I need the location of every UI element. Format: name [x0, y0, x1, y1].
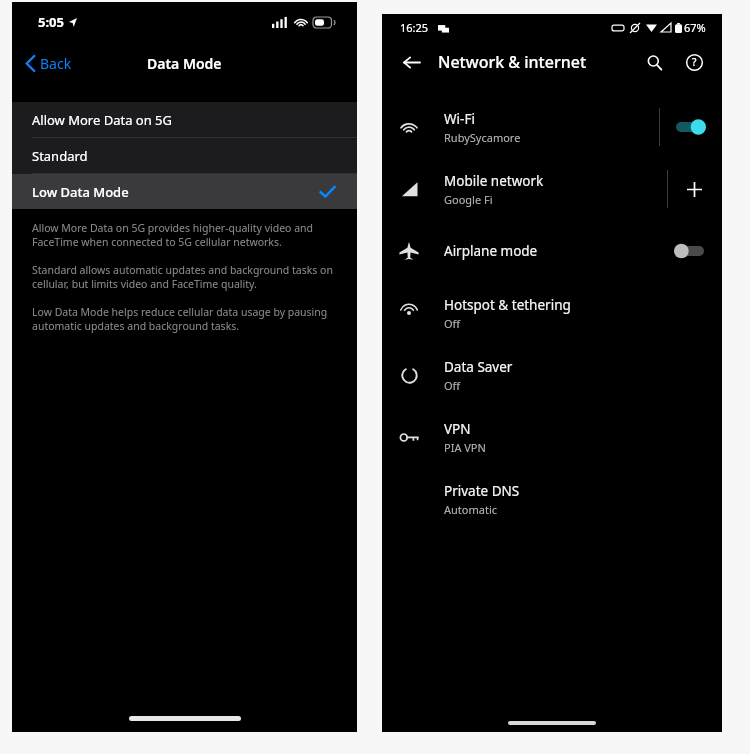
staticText: Airplane mode [444, 242, 538, 260]
button[interactable]: Data Saver [382, 344, 722, 406]
staticText: Automatic [444, 502, 497, 517]
staticText: Wi-Fi [444, 110, 475, 128]
staticText: Data Mode [147, 54, 222, 73]
staticText: 16:25 [400, 20, 429, 35]
staticText: Standard allows automatic updates and ba… [32, 263, 333, 291]
staticText: Google Fi [444, 192, 493, 207]
staticText: Mobile network [444, 172, 544, 190]
staticText: PIA VPN [444, 440, 486, 455]
button[interactable]: Wi-Fi [382, 96, 722, 158]
button[interactable]: Mobile network [382, 158, 722, 220]
staticText: Low Data Mode helps reduce cellular data… [32, 305, 328, 333]
staticText: Off [444, 316, 461, 331]
button[interactable]: Low Data Mode [12, 174, 357, 209]
staticText: Back [40, 54, 72, 73]
staticText: VPN [444, 420, 471, 438]
staticText: Standard [32, 147, 88, 165]
button[interactable]: Airplane mode toggle [674, 243, 704, 259]
staticText: 5:05 [38, 13, 64, 31]
staticText: Private DNS [444, 482, 520, 500]
button[interactable]: Search [638, 46, 670, 78]
staticText: Allow More Data on 5G [32, 111, 173, 129]
button[interactable]: Back [394, 45, 428, 79]
button[interactable]: Add network [680, 175, 708, 203]
staticText: 67% [684, 20, 706, 35]
staticText: Data Saver [444, 358, 513, 376]
button[interactable]: Airplane mode [382, 220, 722, 282]
staticText: ? [692, 55, 697, 69]
button[interactable]: Wi-Fi toggle [676, 119, 706, 135]
button[interactable]: Back [12, 48, 82, 79]
button[interactable]: Standard [12, 138, 357, 173]
button[interactable]: Private DNS [382, 468, 722, 530]
button[interactable]: Allow More Data on 5G [12, 102, 357, 137]
staticText: Low Data Mode [32, 183, 129, 201]
staticText: RubySycamore [444, 130, 521, 145]
button[interactable]: VPN [382, 406, 722, 468]
staticText: Network & internet [438, 51, 587, 73]
staticText: Allow More Data on 5G provides higher-qu… [32, 221, 313, 249]
staticText: Off [444, 378, 461, 393]
button[interactable]: Hotspot & tethering [382, 282, 722, 344]
button[interactable]: Help [678, 46, 710, 78]
staticText: Hotspot & tethering [444, 296, 571, 314]
